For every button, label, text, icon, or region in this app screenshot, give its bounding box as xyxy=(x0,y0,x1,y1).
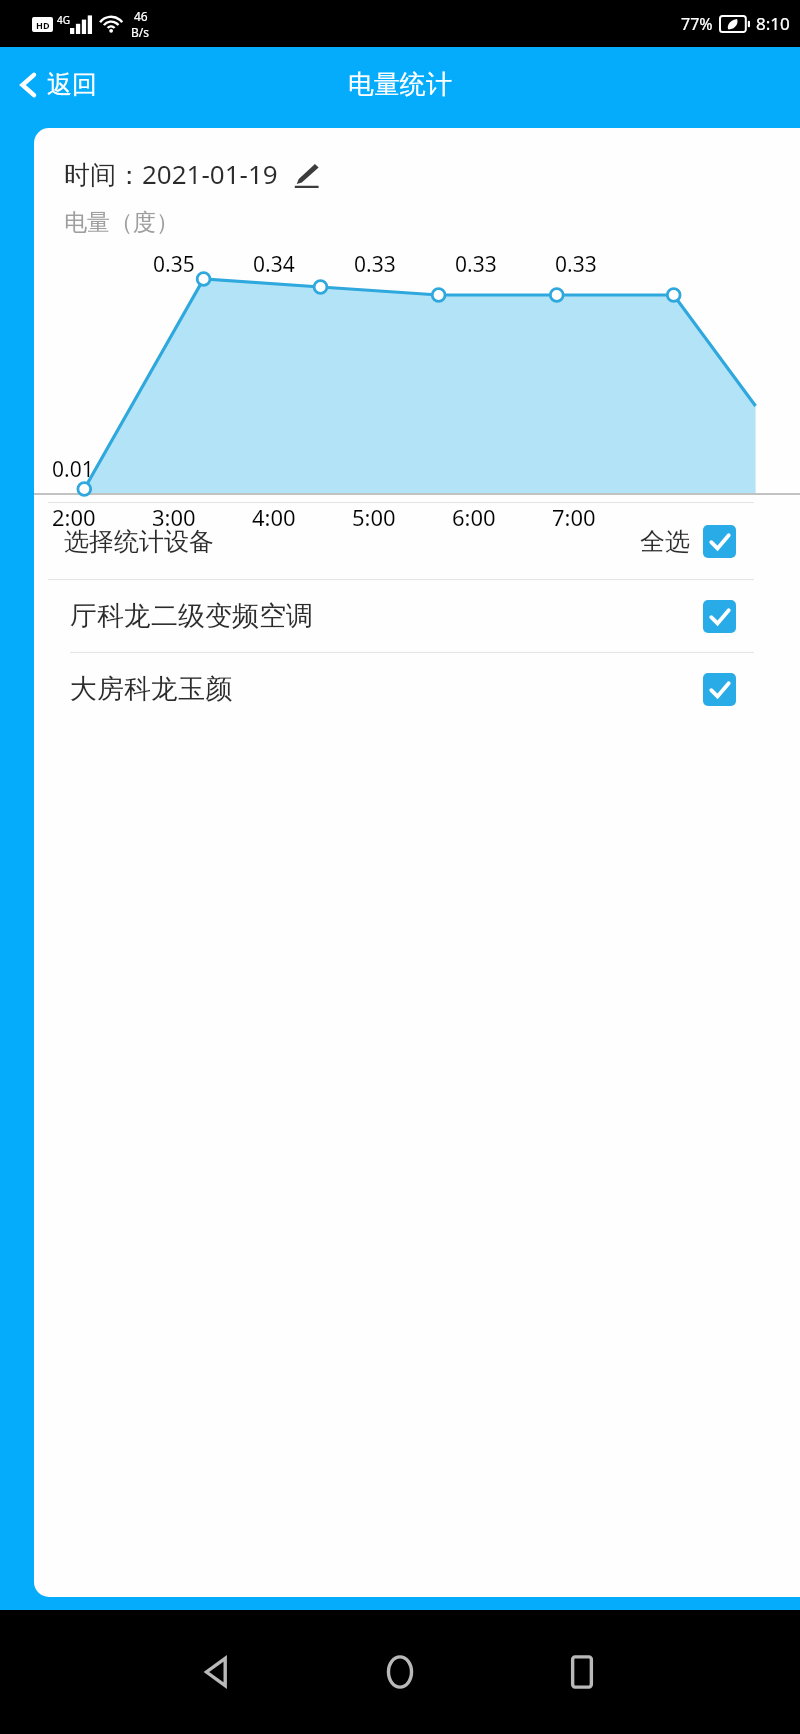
staticText: 大房科龙玉颜 xyxy=(70,672,232,706)
staticText: 电量统计 xyxy=(348,68,452,101)
staticText: 8:10 xyxy=(756,12,790,35)
staticText: 时间：2021-01-19 xyxy=(64,156,278,192)
staticText: 77% xyxy=(681,13,713,35)
staticText: 电量（度） xyxy=(64,208,179,237)
staticText: 0.34 xyxy=(253,250,295,279)
staticText: 返回 xyxy=(47,69,97,100)
button[interactable]: 主页 xyxy=(354,1630,446,1714)
staticText: 0.33 xyxy=(555,250,597,279)
staticText: 3:00 xyxy=(152,502,196,532)
staticText: 全选 xyxy=(640,526,690,557)
button[interactable]: 已选中 xyxy=(703,600,736,633)
staticText: 0.01 xyxy=(52,455,94,484)
staticText: 5:00 xyxy=(352,502,396,532)
button[interactable]: 已选中 xyxy=(703,525,736,558)
staticText: 0.35 xyxy=(153,250,195,279)
staticText: HD xyxy=(36,19,50,31)
button[interactable]: 大房科龙玉颜 xyxy=(34,653,800,725)
staticText: 0.33 xyxy=(455,250,497,279)
staticText: B/s xyxy=(131,24,150,40)
button[interactable]: 厅科龙二级变频空调 xyxy=(34,580,800,652)
staticText: 4:00 xyxy=(252,502,296,532)
staticText: 2:00 xyxy=(52,502,96,532)
button[interactable]: 选择统计设备 xyxy=(34,503,800,579)
staticText: 0.33 xyxy=(354,250,396,279)
staticText: 46 xyxy=(134,8,148,24)
staticText: 选择统计设备 xyxy=(64,526,214,557)
staticText: 4G xyxy=(57,13,70,27)
other: 编辑日期 xyxy=(292,160,320,188)
staticText: 6:00 xyxy=(452,502,496,532)
button[interactable]: 已选中 xyxy=(703,673,736,706)
button[interactable]: 返回 xyxy=(0,61,111,108)
button[interactable]: 最近任务 xyxy=(536,1630,628,1714)
button[interactable]: 时间：2021-01-19 xyxy=(34,128,320,202)
staticText: 厅科龙二级变频空调 xyxy=(70,599,313,633)
staticText: 7:00 xyxy=(552,502,596,532)
button[interactable]: 返回 xyxy=(172,1630,264,1714)
